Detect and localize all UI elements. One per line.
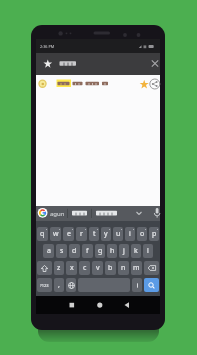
button[interactable]: s (56, 244, 67, 258)
button[interactable]: w (50, 227, 61, 241)
button[interactable]: n (118, 261, 129, 275)
button[interactable]: y (101, 227, 111, 241)
staticText: u (116, 229, 121, 239)
button[interactable]: k (131, 244, 141, 258)
staticText: y (104, 229, 108, 239)
button[interactable]: e (63, 227, 74, 241)
button[interactable]: b (105, 261, 116, 275)
button[interactable]: ?123 (37, 278, 52, 292)
button[interactable]: h (107, 244, 117, 258)
staticText: n (121, 263, 126, 273)
staticText: ?123 (40, 283, 49, 288)
button[interactable] (144, 278, 159, 292)
staticText: v (96, 263, 100, 273)
button[interactable]: , (54, 278, 64, 292)
staticText: o (140, 229, 145, 239)
staticText: d (72, 246, 77, 256)
staticText: c (83, 263, 87, 273)
staticText: t (93, 229, 96, 239)
button[interactable]: x (66, 261, 77, 275)
staticText: k (134, 246, 138, 256)
staticText: p (152, 229, 157, 239)
button[interactable]: d (69, 244, 80, 258)
button[interactable]: v (92, 261, 103, 275)
staticText: a (47, 246, 51, 256)
button[interactable]: r (76, 227, 87, 241)
staticText: b (108, 263, 113, 273)
staticText: g (98, 246, 103, 256)
staticText: e (67, 229, 71, 239)
staticText: i (129, 229, 131, 239)
staticText: f (86, 246, 89, 256)
staticText: w (53, 229, 59, 239)
button[interactable]: z (54, 261, 64, 275)
button[interactable]: a (43, 244, 54, 258)
staticText: , (58, 280, 60, 290)
button[interactable] (36, 53, 160, 75)
staticText: m (133, 263, 140, 273)
button[interactable]: l (143, 244, 153, 258)
staticText: l (147, 246, 149, 256)
staticText: z (57, 263, 61, 273)
button[interactable] (66, 278, 76, 292)
staticText: q (40, 229, 45, 239)
button[interactable]: i (125, 227, 135, 241)
button[interactable] (132, 278, 142, 292)
staticText: r (80, 229, 83, 239)
button[interactable] (36, 75, 160, 93)
button[interactable]: p (149, 227, 159, 241)
button[interactable]: q (37, 227, 48, 241)
staticText: agun (50, 210, 65, 218)
button[interactable] (144, 261, 159, 275)
staticText: s (60, 246, 64, 256)
button[interactable]: u (113, 227, 123, 241)
button[interactable]: j (119, 244, 129, 258)
button[interactable]: c (79, 261, 90, 275)
button[interactable]: f (82, 244, 93, 258)
staticText: j (123, 246, 125, 256)
button[interactable]: o (137, 227, 147, 241)
button[interactable]: m (131, 261, 142, 275)
staticText: x (70, 263, 74, 273)
button[interactable] (37, 261, 52, 275)
staticText: 2:36 PM (40, 44, 55, 49)
button[interactable]: g (95, 244, 105, 258)
staticText: h (110, 246, 115, 256)
button[interactable]: t (89, 227, 99, 241)
